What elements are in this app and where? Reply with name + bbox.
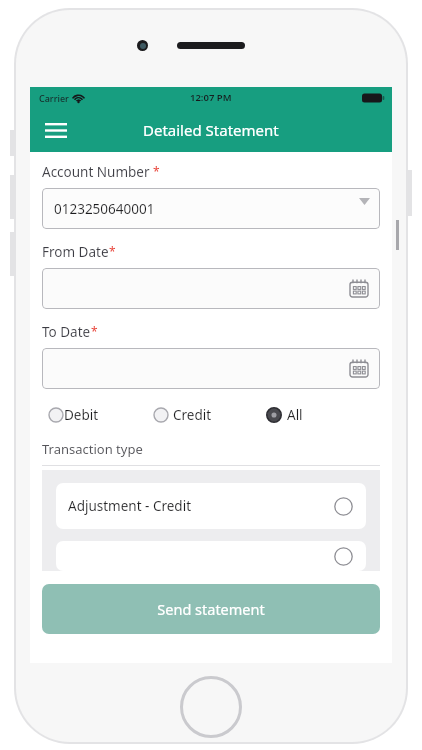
staticText: Adjustment - Credit (68, 497, 192, 515)
staticText: From Date (42, 243, 109, 261)
button[interactable]: All (266, 406, 303, 424)
staticText: * (109, 243, 116, 259)
staticText: * (150, 163, 160, 179)
staticText: All (287, 406, 303, 424)
button[interactable]: Debit (48, 406, 99, 424)
staticText: Account Number (42, 163, 150, 181)
staticText: Transaction type (42, 440, 143, 458)
button[interactable]: Open navigation menu (36, 110, 76, 150)
staticText: Send statement (157, 599, 265, 619)
staticText: Debit (64, 406, 99, 424)
button[interactable]: Pick a date (42, 268, 380, 309)
button[interactable]: Send statement (42, 584, 380, 634)
staticText: Credit (173, 406, 212, 424)
staticText: To Date (42, 323, 91, 341)
button[interactable]: 0123250640001 (42, 188, 380, 229)
staticText: Carrier (39, 92, 69, 104)
button[interactable] (56, 541, 366, 571)
staticText: 0123250640001 (54, 200, 155, 218)
staticText: 12:07 PM (190, 91, 232, 104)
button[interactable]: Adjustment - Credit (56, 483, 366, 529)
button[interactable]: Credit (153, 406, 212, 424)
button[interactable]: Pick a date (42, 348, 380, 389)
staticText: Detailed Statement (143, 120, 279, 140)
staticText: * (91, 323, 98, 339)
